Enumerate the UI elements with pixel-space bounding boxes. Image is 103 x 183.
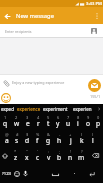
staticText: 6	[57, 115, 60, 120]
button[interactable]: "	[21, 147, 32, 164]
staticText: v	[47, 153, 51, 162]
staticText: experien	[73, 106, 92, 112]
button[interactable]: Space	[31, 164, 70, 183]
staticText: 155/1	[90, 94, 101, 99]
button[interactable]: Back	[0, 9, 14, 23]
staticText: 4	[37, 115, 40, 120]
staticText: -	[59, 132, 61, 137]
staticText: p	[96, 119, 101, 128]
staticText: g	[46, 136, 51, 145]
staticText: 3	[26, 115, 29, 120]
button[interactable]: exped	[0, 104, 15, 113]
staticText: s	[15, 136, 19, 145]
button[interactable]: Emoji	[0, 92, 12, 104]
staticText: +	[69, 132, 72, 137]
button[interactable]: #	[12, 130, 22, 147]
button[interactable]: 4	[33, 113, 43, 130]
button[interactable]: @	[2, 130, 12, 147]
staticText: New message	[16, 12, 54, 20]
button[interactable]: Pick contacts	[89, 26, 99, 36]
staticText: ?123	[2, 171, 12, 177]
staticText: u	[66, 119, 71, 128]
button[interactable]: )	[87, 130, 98, 147]
staticText: !	[70, 149, 72, 154]
button[interactable]: 3	[22, 113, 33, 130]
staticText: :	[48, 149, 50, 154]
staticText: .	[74, 169, 76, 176]
button[interactable]: Emoji keyboard	[14, 164, 20, 183]
button[interactable]: 8	[73, 113, 83, 130]
button[interactable]: ;	[54, 147, 65, 164]
button[interactable]: ?	[76, 147, 87, 164]
staticText: %	[36, 132, 40, 137]
staticText: a	[5, 136, 9, 145]
button[interactable]: 2	[11, 113, 22, 130]
staticText: k	[80, 136, 84, 145]
staticText: x	[25, 153, 29, 162]
button[interactable]: 5	[43, 113, 53, 130]
staticText: &	[47, 132, 50, 137]
staticText: w	[14, 119, 20, 128]
staticText: h	[57, 136, 62, 145]
staticText: 3:43 PM	[86, 1, 102, 7]
button[interactable]: +	[65, 130, 76, 147]
button[interactable]: Send message	[88, 79, 101, 92]
button[interactable]: *	[10, 147, 21, 164]
staticText: 9	[87, 115, 90, 120]
button[interactable]: Period	[70, 164, 80, 183]
button[interactable]: experien	[69, 104, 95, 113]
staticText: '	[37, 149, 38, 154]
button[interactable]: (	[76, 130, 87, 147]
staticText: f	[36, 136, 39, 145]
staticText: #	[16, 132, 19, 137]
staticText: o	[86, 119, 90, 128]
staticText: 0	[97, 115, 100, 120]
staticText: z	[14, 153, 18, 162]
button[interactable]: $	[22, 130, 32, 147]
staticText: ?	[81, 149, 83, 154]
staticText: l	[92, 136, 94, 145]
staticText: e	[26, 119, 30, 128]
button[interactable]: :	[43, 147, 54, 164]
staticText: d	[25, 136, 30, 145]
staticText: i	[77, 119, 79, 128]
staticText: 7	[67, 115, 70, 120]
staticText: t	[47, 119, 50, 128]
button[interactable]: experience	[15, 104, 42, 113]
staticText: experiment	[43, 106, 68, 112]
button[interactable]: %	[32, 130, 43, 147]
staticText: Enter recipients	[5, 29, 32, 34]
button[interactable]: experiment	[42, 104, 69, 113]
button[interactable]: Voice input	[20, 164, 31, 183]
button[interactable]: &	[43, 130, 54, 147]
staticText: m	[78, 153, 85, 162]
button[interactable]: Symbols	[0, 164, 14, 183]
staticText: r	[37, 119, 40, 128]
button[interactable]: Attach file	[0, 77, 12, 89]
staticText: "	[26, 149, 28, 154]
staticText: y	[56, 119, 60, 128]
button[interactable]: Enter	[80, 164, 103, 183]
staticText: j	[70, 136, 72, 145]
staticText: q	[3, 119, 8, 128]
staticText: 5	[47, 115, 50, 120]
staticText: $	[26, 132, 29, 137]
button[interactable]: !	[65, 147, 76, 164]
staticText: 2	[15, 115, 18, 120]
button[interactable]: 6	[53, 113, 63, 130]
staticText: (	[81, 132, 83, 137]
button[interactable]: -	[54, 130, 65, 147]
button[interactable]: 9	[83, 113, 93, 130]
button[interactable]: '	[32, 147, 43, 164]
staticText: Enjoy a new typing experience	[12, 80, 65, 85]
button[interactable]: 1	[0, 113, 11, 130]
button[interactable]: Backspace	[87, 147, 103, 164]
staticText: n	[68, 153, 73, 162]
button[interactable]: More options	[90, 9, 103, 22]
button[interactable]: 0	[93, 113, 103, 130]
button[interactable]: More suggestions	[95, 104, 103, 113]
staticText: c	[36, 153, 40, 162]
button[interactable]: Shift	[0, 147, 10, 164]
staticText: experience	[17, 106, 41, 112]
button[interactable]: 7	[63, 113, 73, 130]
